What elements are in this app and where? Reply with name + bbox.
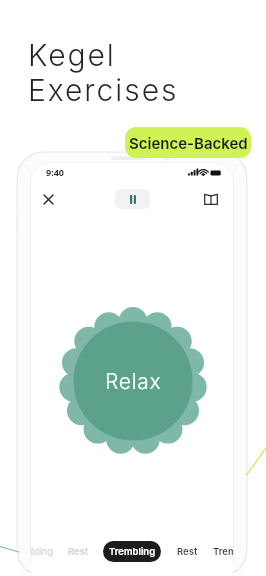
staticText: Rest xyxy=(68,546,89,557)
staticText: Rest xyxy=(177,546,198,557)
button[interactable]: Rest xyxy=(177,545,198,558)
button[interactable]: Trembling xyxy=(213,545,233,558)
staticText: Relax xyxy=(105,369,162,394)
button[interactable]: Trembling xyxy=(31,545,54,558)
button[interactable]: Science-Backed xyxy=(125,127,251,158)
button[interactable]: Rest xyxy=(68,545,89,558)
button[interactable]: Pause xyxy=(115,189,150,209)
button[interactable]: Guide xyxy=(198,186,223,211)
button[interactable]: Close xyxy=(36,187,61,212)
button[interactable]: Trembling xyxy=(103,541,161,562)
staticText: Trembling xyxy=(109,546,156,557)
staticText: Kegel xyxy=(28,37,116,73)
staticText: 9:40 xyxy=(46,166,64,178)
staticText: Exercises xyxy=(28,72,179,108)
staticText: Science-Backed xyxy=(129,134,248,152)
staticText: Trembling xyxy=(31,546,54,557)
staticText: Trembling xyxy=(213,546,233,557)
